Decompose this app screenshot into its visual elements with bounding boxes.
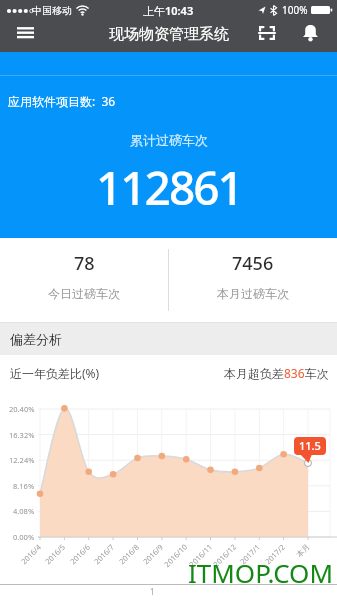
staticText: 20.40% [9,404,35,414]
staticText: 2016/10 [162,541,190,569]
button[interactable]: 7456 [168,238,337,322]
button[interactable] [10,18,40,48]
staticText: 中国移动 [32,4,72,17]
staticText: 累计过磅车次 [130,132,208,148]
staticText: 本月 [295,542,312,559]
button[interactable]: 78 [0,238,168,322]
staticText: 2016/12 [211,541,239,569]
staticText: 2016/5 [43,541,67,566]
staticText: 2017/1 [238,541,262,566]
button[interactable] [293,17,327,49]
staticText: 偏差分析 [10,331,62,347]
staticText: 12.24% [9,455,35,465]
staticText: 2017/2 [263,541,287,566]
staticText: 近一年负差比(%) [10,365,100,381]
button[interactable] [250,17,284,49]
staticText: 2016/11 [187,541,215,569]
staticText: 4.08% [13,506,35,516]
staticText: 7456 [232,251,274,276]
staticText: 现场物资管理系统 [109,25,229,44]
staticText: 上午10:43 [143,3,194,18]
staticText: 11.5 [299,438,321,453]
staticText: 2016/6 [68,541,92,566]
staticText: 本月过磅车次 [217,286,289,301]
staticText: 100% [282,3,308,17]
staticText: 1 [150,586,155,597]
staticText: 本月超负差836车次 [224,365,329,381]
staticText: 2016/4 [19,541,43,566]
staticText: ITMOP.COM [188,555,333,590]
staticText: 8.16% [13,481,35,491]
staticText: 2016/9 [141,541,165,566]
staticText: 2016/7 [92,541,116,566]
staticText: 0.00% [13,532,35,542]
staticText: 2016/8 [117,541,141,566]
staticText: 今日过磅车次 [48,286,120,301]
staticText: 78 [74,251,95,276]
staticText: 112861 [96,156,242,219]
staticText: 16.32% [9,430,35,440]
button[interactable]: 应用软件项目数: 36 [8,93,116,109]
